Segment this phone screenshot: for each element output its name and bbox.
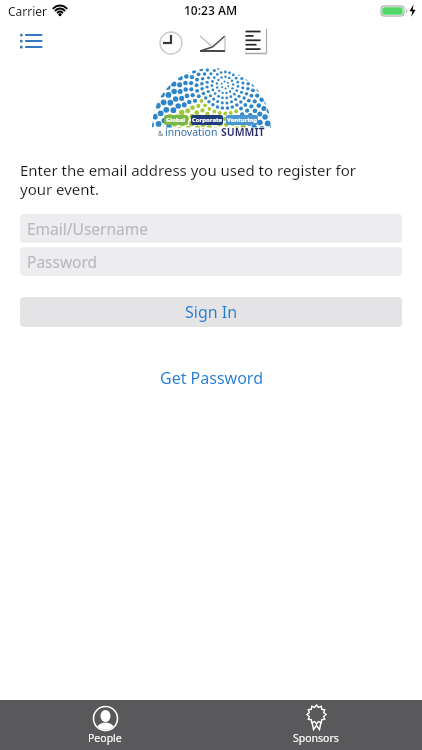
staticText: Venturing xyxy=(227,116,257,124)
staticText: Sign In xyxy=(185,301,238,323)
button[interactable] xyxy=(20,33,42,50)
staticText: Enter the email address you used to regi… xyxy=(20,160,410,199)
button[interactable] xyxy=(199,34,226,52)
staticText: Email/Username xyxy=(27,218,148,239)
staticText: Carrier xyxy=(8,3,48,19)
button[interactable]: Sponsors xyxy=(271,700,361,750)
staticText: SUMMIT xyxy=(221,125,265,139)
button[interactable]: People xyxy=(60,700,150,750)
staticText: Global xyxy=(166,116,186,124)
button[interactable]: Sign In xyxy=(20,297,402,327)
staticText: 10:23 AM xyxy=(184,2,238,18)
button[interactable] xyxy=(245,28,268,55)
staticText: Corporate xyxy=(192,116,223,124)
staticText: Password xyxy=(27,251,98,272)
staticText: Sponsors xyxy=(293,731,339,745)
staticText: innovation xyxy=(165,125,221,139)
button[interactable]: Password xyxy=(20,247,402,276)
staticText: & xyxy=(158,129,165,139)
button[interactable]: Get Password xyxy=(160,367,263,389)
button[interactable] xyxy=(159,31,183,55)
button[interactable]: Email/Username xyxy=(20,214,402,243)
staticText: People xyxy=(88,731,122,745)
